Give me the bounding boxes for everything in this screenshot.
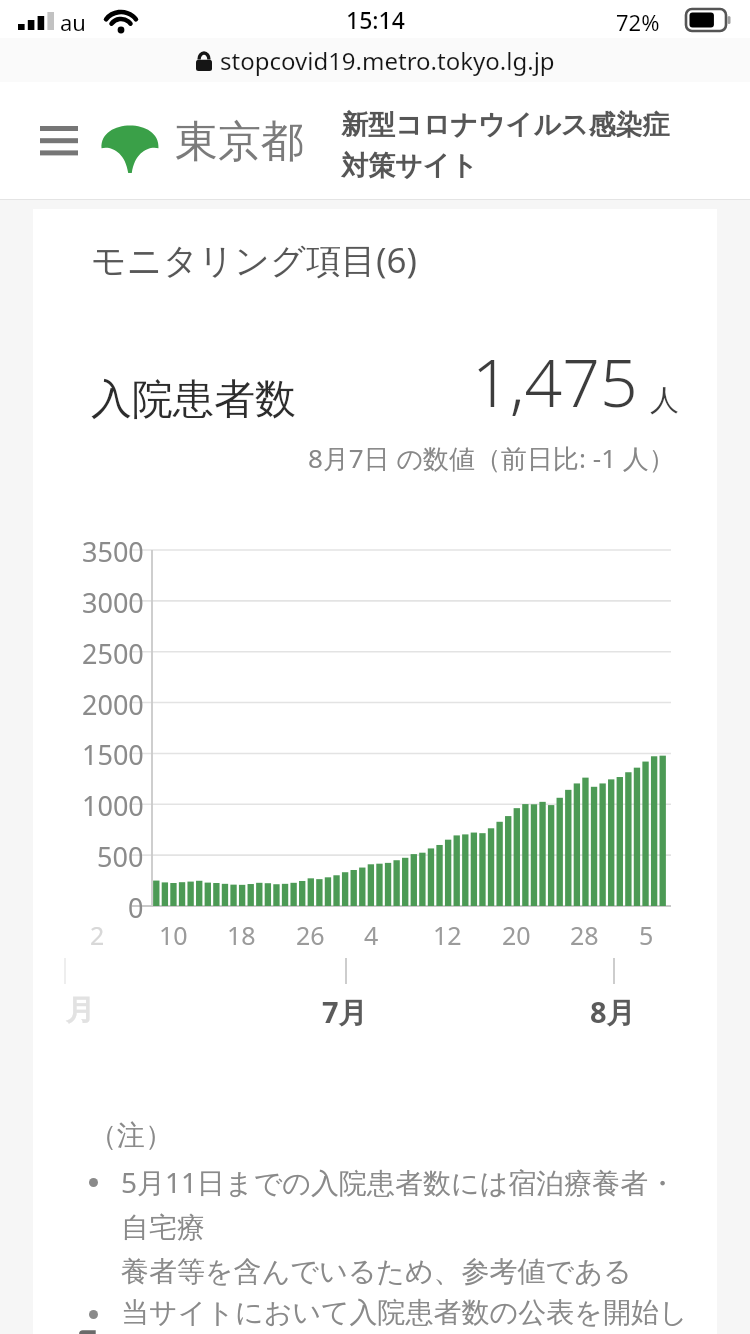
staticText: 1000 (82, 787, 144, 824)
staticText: 10 (159, 918, 188, 952)
staticText: 20 (502, 918, 531, 952)
staticText: 2500 (82, 635, 144, 672)
staticText: 4 (364, 918, 379, 952)
staticText: 28 (570, 918, 599, 952)
staticText: （注） (89, 1118, 173, 1153)
staticText: 7月 (322, 992, 368, 1032)
staticText: 月 (66, 992, 95, 1029)
staticText: 5 (639, 918, 654, 952)
staticText: 東京都 (175, 115, 304, 169)
staticText: 8月 (590, 992, 636, 1032)
staticText: 1,475 (472, 336, 638, 426)
staticText: 人 (650, 382, 679, 419)
staticText: au (60, 7, 86, 37)
staticText: 12 (433, 918, 462, 952)
staticText: 18 (227, 918, 256, 952)
button[interactable]: stopcovid19.metro.tokyo.lg.jp (0, 38, 750, 82)
staticText: 500 (97, 838, 144, 875)
staticText: モニタリング項目(6) (91, 236, 417, 284)
staticText: 8月7日 の数値（前日比: -1 人） (308, 440, 675, 476)
staticText: 72% (616, 7, 660, 37)
staticText: 0 (128, 889, 144, 926)
staticText: 2000 (82, 686, 144, 723)
staticText: stopcovid19.metro.tokyo.lg.jp (220, 44, 555, 77)
staticText: 1500 (82, 736, 144, 773)
staticText: 新型コロナウイルス感染症 (341, 108, 670, 142)
staticText: 当サイトにおいて入院患者数の公表を開始した3月 6日から作成 (121, 1295, 691, 1334)
staticText: 3500 (82, 533, 144, 570)
staticText: 5月11日までの入院患者数には宿泊療養者・自宅療 養者等を含んでいるため、参考値… (121, 1163, 691, 1289)
staticText: 26 (296, 918, 325, 952)
staticText: 入院患者数 (91, 374, 296, 426)
staticText: 2 (90, 918, 105, 952)
button[interactable]: Menu (29, 110, 89, 170)
staticText: 15:14 (346, 4, 405, 35)
staticText: 3000 (82, 584, 144, 621)
staticText: 対策サイト (341, 149, 478, 183)
